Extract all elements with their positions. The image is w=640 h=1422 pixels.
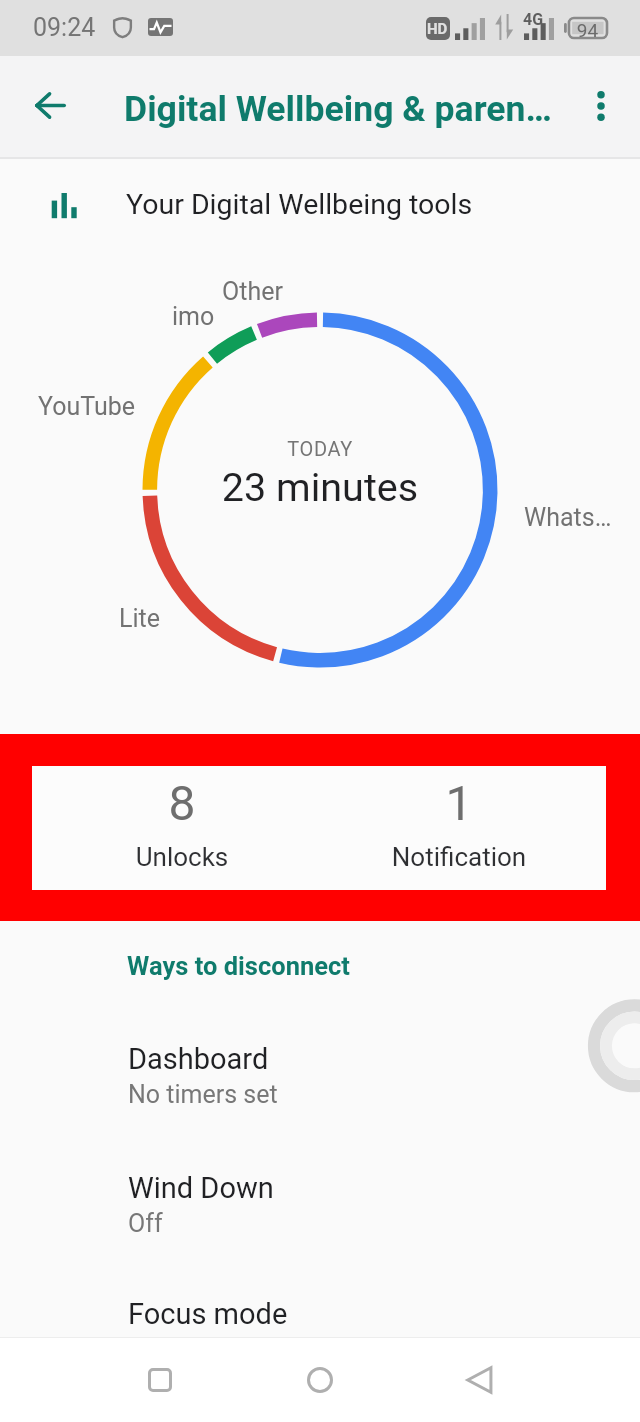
staticText: Lite [119, 604, 160, 633]
staticText: 94 [574, 19, 601, 41]
staticText: Unlocks [43, 842, 321, 872]
button[interactable]: Home [279, 1337, 361, 1422]
staticText: 1 [311, 775, 607, 831]
staticText: Focus mode [128, 1297, 288, 1331]
staticText: imo [172, 302, 215, 331]
staticText: YouTube [38, 392, 136, 421]
staticText: 09:24 [33, 13, 96, 42]
button[interactable]: 8 [43, 766, 321, 890]
staticText: Wind Down [128, 1171, 274, 1205]
button[interactable]: Focus mode [0, 1297, 640, 1355]
button[interactable]: More options [568, 71, 634, 137]
button[interactable]: Navigate up [16, 71, 85, 140]
button[interactable]: 1 [311, 766, 607, 890]
button[interactable]: Back [439, 1337, 521, 1422]
staticText: 4G [523, 10, 544, 29]
staticText: Your Digital Wellbeing tools [126, 188, 473, 221]
staticText: Whats… [524, 503, 612, 532]
staticText: Dashboard [128, 1042, 269, 1076]
staticText: HD [427, 20, 448, 38]
staticText: 8 [43, 775, 321, 831]
staticText: TODAY [0, 437, 640, 460]
staticText: Notification [311, 842, 607, 872]
button[interactable]: Dashboard [0, 1042, 640, 1142]
staticText: 23 minutes [0, 464, 640, 510]
staticText: Ways to disconnect [127, 951, 350, 981]
staticText: No timers set [128, 1080, 278, 1109]
staticText: Digital Wellbeing & paren… [124, 88, 552, 130]
staticText: Other [222, 277, 283, 306]
staticText: Off [128, 1209, 163, 1238]
button[interactable]: Recent apps [119, 1337, 201, 1422]
button[interactable]: Wind Down [0, 1171, 640, 1271]
